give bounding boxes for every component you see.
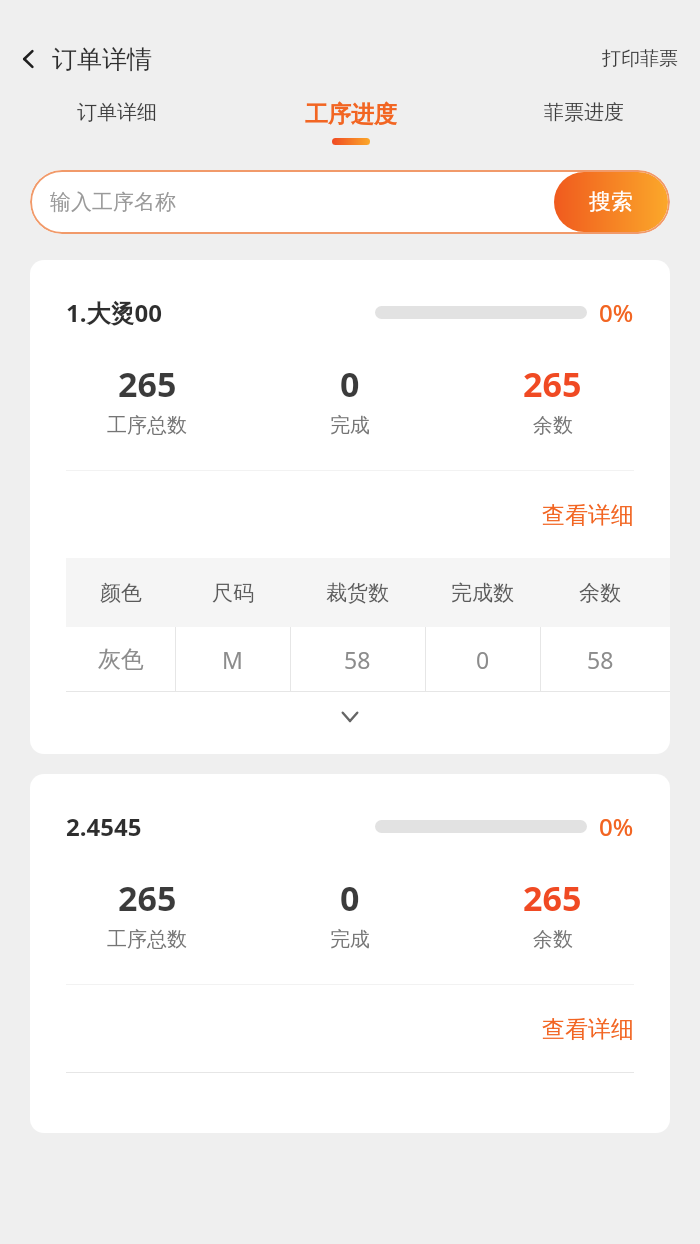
staticText: M — [222, 644, 243, 675]
staticText: 灰色 — [98, 645, 144, 674]
staticText: 工序总数 — [107, 413, 187, 438]
staticText: 完成 — [330, 413, 370, 438]
button[interactable]: 查看详细 — [506, 497, 670, 534]
staticText: 58 — [587, 644, 614, 675]
staticText: 工序进度 — [305, 100, 397, 129]
staticText: 265 — [523, 361, 582, 407]
staticText: 打印菲票 — [602, 47, 678, 71]
staticText: 工序总数 — [107, 927, 187, 952]
staticText: 265 — [118, 875, 177, 921]
other: Back — [12, 42, 46, 76]
other: Expand — [336, 704, 364, 732]
staticText: 尺码 — [212, 580, 254, 606]
staticText: 查看详细 — [542, 1015, 634, 1044]
button[interactable]: 打印菲票 — [580, 28, 700, 90]
staticText: 裁货数 — [326, 580, 389, 606]
button[interactable]: Expand — [30, 696, 670, 740]
staticText: 0 — [340, 361, 360, 407]
staticText: 余数 — [533, 413, 573, 438]
staticText: 输入工序名称 — [50, 189, 176, 215]
staticText: 0% — [599, 810, 634, 843]
button[interactable]: 1.大烫00 — [30, 260, 670, 754]
staticText: 完成数 — [451, 580, 514, 606]
staticText: 265 — [523, 875, 582, 921]
button[interactable]: 菲票进度 — [467, 90, 700, 156]
staticText: 1.大烫00 — [66, 296, 162, 329]
staticText: 2.4545 — [66, 810, 142, 843]
staticText: 0 — [340, 875, 360, 921]
staticText: 余数 — [579, 580, 621, 606]
staticText: 菲票进度 — [544, 100, 624, 125]
staticText: 订单详细 — [77, 100, 157, 125]
staticText: 完成 — [330, 927, 370, 952]
staticText: 余数 — [533, 927, 573, 952]
staticText: 0 — [476, 644, 490, 675]
staticText: 搜索 — [589, 188, 633, 216]
button[interactable]: 查看详细 — [506, 1011, 670, 1048]
staticText: 查看详细 — [542, 501, 634, 530]
staticText: 订单详情 — [52, 44, 152, 75]
staticText: 58 — [344, 644, 371, 675]
staticText: 265 — [118, 361, 177, 407]
staticText: 0% — [599, 296, 634, 329]
button[interactable]: 搜索 — [554, 172, 668, 232]
button[interactable]: Back — [8, 28, 156, 90]
button[interactable]: 订单详细 — [0, 90, 234, 156]
button[interactable]: 工序进度 — [234, 90, 467, 156]
staticText: 颜色 — [100, 580, 142, 606]
button[interactable]: 2.4545 — [30, 774, 670, 1133]
